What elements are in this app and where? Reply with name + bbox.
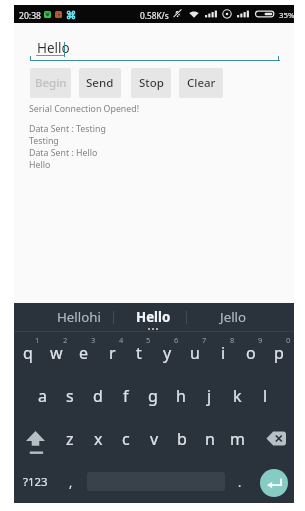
staticText: 6 [174,335,179,345]
staticText: 3 [91,335,96,345]
staticText: Jello [220,308,247,326]
staticText: x [94,428,103,450]
staticText: l [263,385,268,407]
staticText: h [176,385,186,407]
staticText: 1 [35,335,40,345]
button[interactable]: Begin [30,68,71,98]
button[interactable]: Stop [131,68,171,98]
button[interactable]: 7 [181,331,209,374]
button[interactable]: Jello [199,303,267,330]
staticText: 8 [230,335,235,345]
staticText: 2 [63,335,68,345]
staticText: Hello [37,39,70,57]
staticText: c [122,428,130,450]
staticText: n [205,428,215,450]
staticText: 9 [258,335,263,345]
button[interactable]: 6 [153,331,181,374]
button[interactable]: k [223,374,251,417]
staticText: 20:38 [19,10,41,22]
button[interactable]: Hellohi [45,303,113,330]
button[interactable]: Shift [14,421,56,464]
staticText: j [207,385,212,407]
staticText: y [163,342,172,364]
staticText: . [238,474,242,490]
staticText: Send [86,75,114,91]
button[interactable]: , [57,460,84,503]
button[interactable]: 9 [237,331,265,374]
button[interactable]: Hello [119,303,187,330]
staticText: m [230,428,245,450]
staticText: r [109,342,116,364]
button[interactable]: . [225,460,254,503]
button[interactable]: b [168,417,196,460]
button[interactable]: x [84,417,112,460]
staticText: z [66,428,74,450]
button[interactable]: 5 [125,331,153,374]
staticText: 0.58K/s [140,10,169,21]
button[interactable]: ?123 [14,460,57,503]
staticText: f [123,385,129,407]
button[interactable]: g [139,374,167,417]
button[interactable]: 0 [265,331,293,374]
staticText: k [233,385,242,407]
button[interactable]: 8 [209,331,237,374]
button[interactable]: f [112,374,140,417]
button[interactable]: c [112,417,140,460]
button[interactable]: 4 [98,331,126,374]
button[interactable]: n [196,417,224,460]
staticText: u [190,342,200,364]
button[interactable]: j [195,374,223,417]
button[interactable]: 3 [70,331,98,374]
button[interactable]: Enter [260,469,288,497]
staticText: , [69,474,73,490]
staticText: e [79,342,89,364]
staticText: Stop [139,75,164,91]
staticText: 35% [279,10,295,21]
staticText: a [38,385,47,407]
staticText: 0 [286,335,291,345]
button[interactable]: h [167,374,195,417]
staticText: t [136,342,142,364]
staticText: ?123 [23,474,48,490]
staticText: o [246,342,256,364]
button[interactable]: Send [79,68,121,98]
button[interactable]: l [251,374,279,417]
staticText: Serial Connection Opened! [29,103,140,115]
staticText: 4 [119,335,124,345]
staticText: p [274,342,284,364]
button[interactable]: Clear [179,68,223,98]
button[interactable]: m [223,417,251,460]
button[interactable]: d [84,374,112,417]
button[interactable]: 2 [42,331,70,374]
staticText: q [23,342,33,364]
staticText: Hellohi [57,308,101,326]
staticText: 7 [202,335,207,345]
button[interactable]: s [56,374,84,417]
staticText: Hello [136,308,171,326]
button[interactable]: v [140,417,168,460]
staticText: g [148,385,158,407]
staticText: v [150,428,159,450]
button[interactable]: z [56,417,84,460]
staticText: i [221,342,226,364]
staticText: d [93,385,103,407]
button[interactable]: Backspace [255,417,297,460]
staticText: Clear [187,75,216,91]
button[interactable]: a [28,374,56,417]
staticText: 5 [146,335,151,345]
staticText: Begin [35,75,67,91]
staticText: w [50,342,63,364]
button[interactable]: 1 [14,331,42,374]
staticText: Data Sent : Testing Testing Data Sent : … [29,123,106,171]
staticText: s [66,385,74,407]
staticText: b [177,428,187,450]
